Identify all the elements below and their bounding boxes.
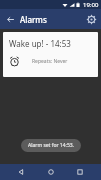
staticText: Alarms <box>20 14 47 25</box>
button[interactable]: Back <box>0 9 20 29</box>
button[interactable]: Back <box>13 164 29 180</box>
button[interactable]: Wake up! - 14:53 <box>3 32 98 77</box>
staticText: Alarm set for 14:53. <box>28 142 74 149</box>
button[interactable]: Home <box>43 164 59 180</box>
staticText: 19:00 <box>83 1 99 9</box>
staticText: Repeats: Never <box>32 58 68 65</box>
staticText: Wake up! - 14:53 <box>9 38 71 49</box>
button[interactable]: Settings <box>81 9 101 29</box>
button[interactable]: Recents <box>72 164 88 180</box>
